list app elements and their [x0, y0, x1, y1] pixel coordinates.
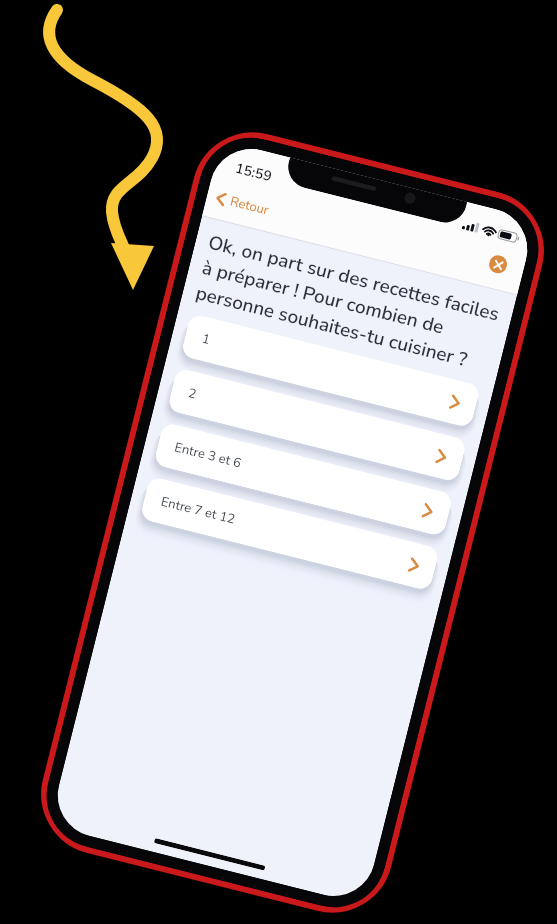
staticText: Entre 7 et 12	[159, 493, 237, 529]
staticText: Retour	[228, 192, 271, 220]
staticText: Ok, on part sur des recettes faciles à p…	[193, 229, 513, 381]
staticText: 1	[200, 330, 212, 349]
staticText: Entre 3 et 6	[173, 438, 244, 473]
button[interactable]: 2	[167, 367, 467, 483]
button[interactable]: Fermer	[487, 253, 509, 275]
staticText: 2	[186, 384, 198, 403]
button[interactable]: Entre 3 et 6	[153, 422, 454, 537]
button[interactable]: Entre 7 et 12	[139, 476, 440, 591]
staticText: 15:59	[233, 159, 274, 186]
button[interactable]: 1	[180, 313, 481, 428]
button[interactable]: Retour	[209, 184, 276, 225]
